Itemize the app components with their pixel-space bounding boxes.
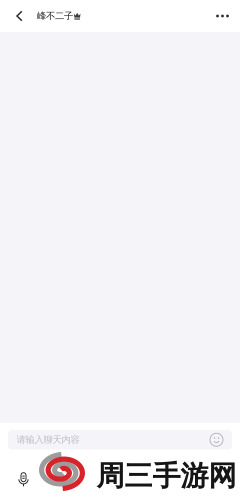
staticText: 周三手游网 bbox=[96, 459, 236, 493]
staticText: 请输入聊天内容 bbox=[16, 434, 79, 445]
staticText: 峰不二子 bbox=[37, 10, 73, 22]
button[interactable]: Voice message bbox=[9, 465, 37, 493]
button[interactable]: More options bbox=[205, 0, 240, 32]
button[interactable]: 请输入聊天内容 bbox=[8, 430, 232, 449]
button[interactable]: Back bbox=[0, 0, 37, 32]
